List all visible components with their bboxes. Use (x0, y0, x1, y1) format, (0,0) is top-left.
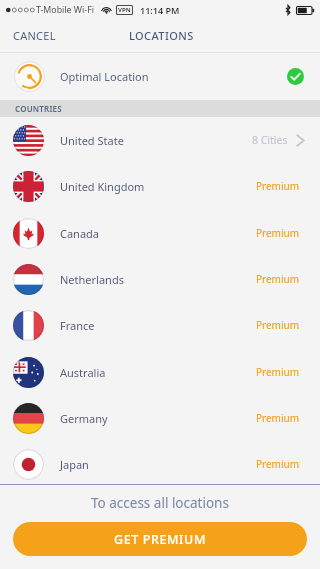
button[interactable]: United Kingdom (0, 163, 320, 209)
button[interactable]: Netherlands (0, 256, 320, 302)
staticText: Australia (60, 365, 106, 380)
staticText: COUNTRIES (15, 103, 62, 114)
staticText: United Kingdom (60, 179, 145, 194)
staticText: GET PREMIUM (114, 531, 207, 548)
button[interactable]: Canada (0, 210, 320, 256)
button[interactable]: Germany (0, 395, 320, 441)
staticText: T-Mobile Wi-Fi (36, 4, 94, 16)
button[interactable]: Optimal Location (0, 53, 320, 100)
button[interactable]: France (0, 302, 320, 348)
staticText: VPN (118, 6, 131, 14)
button[interactable]: GET PREMIUM (13, 522, 307, 556)
staticText: Japan (60, 457, 89, 472)
staticText: Premium (256, 411, 300, 425)
staticText: Netherlands (60, 272, 124, 287)
staticText: Optimal Location (60, 69, 149, 84)
staticText: Premium (256, 318, 300, 332)
staticText: 8 Cities (252, 133, 288, 147)
staticText: Canada (60, 226, 100, 241)
staticText: France (60, 318, 95, 333)
staticText: Premium (256, 226, 300, 240)
staticText: 11:14 PM (140, 4, 180, 16)
staticText: Premium (256, 457, 300, 471)
staticText: Premium (256, 272, 300, 286)
staticText: CANCEL (13, 28, 56, 43)
staticText: Premium (256, 179, 300, 193)
button[interactable]: United State (0, 117, 320, 163)
staticText: Premium (256, 365, 300, 379)
staticText: United State (60, 133, 124, 148)
staticText: Germany (60, 411, 108, 426)
button[interactable]: Australia (0, 349, 320, 395)
button[interactable]: Japan (0, 441, 320, 487)
staticText: LOCATIONS (129, 28, 194, 43)
button[interactable]: CANCEL (0, 21, 69, 50)
staticText: To access all locations (91, 494, 229, 512)
